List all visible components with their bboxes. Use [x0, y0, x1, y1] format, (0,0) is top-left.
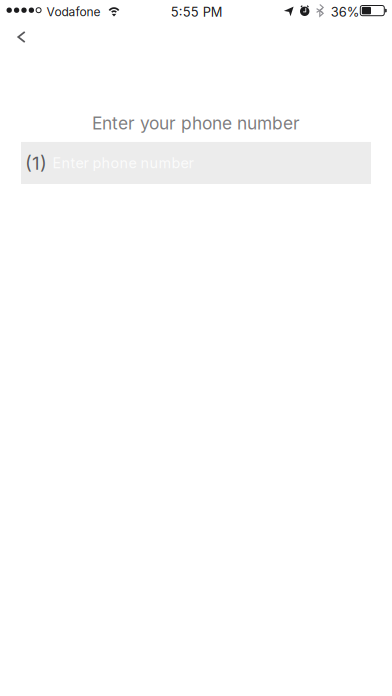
staticText: 36%: [331, 4, 360, 20]
staticText: Enter your phone number: [92, 113, 300, 134]
button[interactable]: Back: [3, 20, 39, 52]
staticText: 5:55 PM: [171, 4, 223, 20]
button[interactable]: (1): [21, 142, 371, 184]
staticText: (1): [25, 152, 47, 174]
staticText: Vodafone: [46, 5, 100, 19]
staticText: Enter phone number: [52, 154, 193, 172]
